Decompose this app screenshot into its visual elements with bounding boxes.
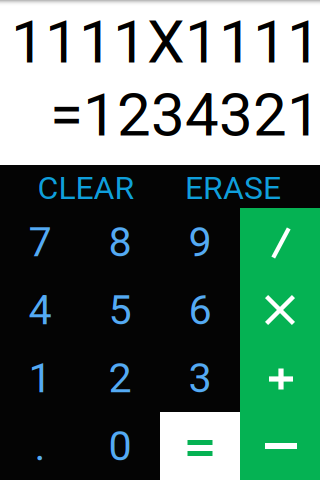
button[interactable]: 1: [0, 344, 80, 412]
staticText: ERASE: [185, 169, 281, 207]
staticText: 3: [188, 354, 211, 402]
button[interactable]: Multiply: [240, 276, 320, 344]
staticText: 0: [108, 422, 131, 470]
button[interactable]: Add: [240, 344, 320, 412]
staticText: 2: [108, 354, 131, 402]
button[interactable]: CLEAR: [6, 166, 166, 209]
staticText: .: [34, 422, 45, 470]
button[interactable]: 2: [80, 344, 160, 412]
staticText: 8: [108, 218, 131, 266]
staticText: 1: [28, 354, 51, 402]
button[interactable]: 6: [160, 276, 240, 344]
staticText: 6: [188, 286, 211, 334]
button[interactable]: 4: [0, 276, 80, 344]
button[interactable]: 9: [160, 208, 240, 276]
button[interactable]: 5: [80, 276, 160, 344]
button[interactable]: 0: [80, 412, 160, 480]
button[interactable]: ERASE: [153, 166, 313, 209]
staticText: 5: [108, 286, 131, 334]
staticText: 7: [28, 218, 51, 266]
staticText: CLEAR: [37, 169, 134, 207]
staticText: =1234321: [50, 80, 320, 150]
button[interactable]: Divide: [240, 208, 320, 276]
button[interactable]: 3: [160, 344, 240, 412]
staticText: 1111X1111: [11, 7, 320, 77]
button[interactable]: 7: [0, 208, 80, 276]
staticText: 4: [28, 286, 51, 334]
button[interactable]: 8: [80, 208, 160, 276]
button[interactable]: Subtract: [240, 412, 320, 480]
button[interactable]: .: [0, 412, 80, 480]
button[interactable]: Equals: [160, 412, 240, 480]
staticText: 9: [188, 218, 211, 266]
